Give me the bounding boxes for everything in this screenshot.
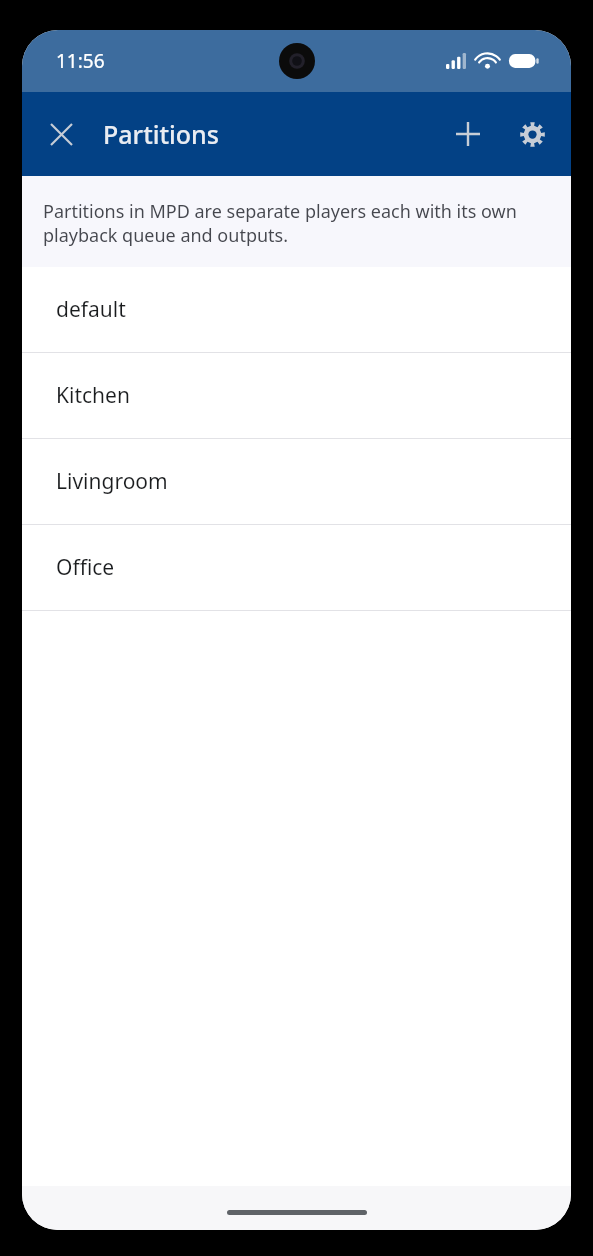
button[interactable]: Kitchen [22, 353, 571, 438]
staticText: Kitchen [56, 381, 130, 410]
staticText: 11:56 [56, 48, 105, 74]
button[interactable]: Livingroom [22, 439, 571, 524]
button[interactable]: Settings [505, 107, 559, 161]
staticText: Partitions in MPD are separate players e… [43, 199, 531, 247]
button[interactable]: Close [35, 108, 87, 160]
staticText: Partitions [103, 117, 219, 151]
staticText: Livingroom [56, 467, 168, 496]
button[interactable]: Office [22, 525, 571, 610]
staticText: Office [56, 553, 115, 582]
button[interactable]: default [22, 267, 571, 352]
button[interactable]: Add partition [441, 107, 495, 161]
staticText: default [56, 295, 126, 324]
